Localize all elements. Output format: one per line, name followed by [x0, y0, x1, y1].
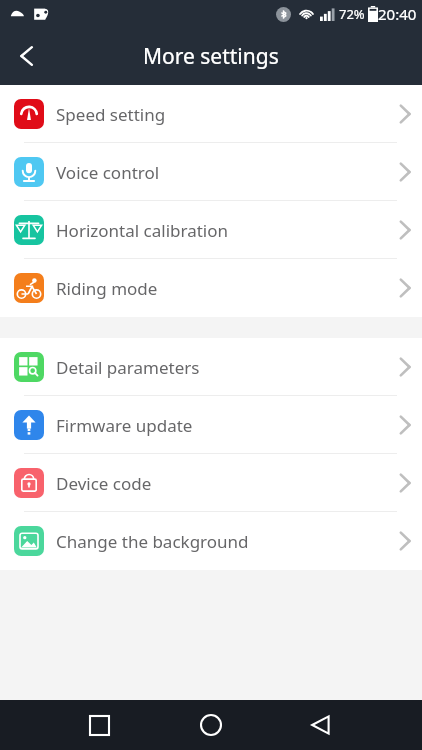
staticText: Detail parameters	[56, 356, 200, 379]
button[interactable]: Firmware update	[0, 396, 422, 454]
staticText: Horizontal calibration	[56, 219, 229, 242]
button[interactable]: Back	[297, 701, 345, 749]
staticText: Firmware update	[56, 414, 193, 437]
staticText: Riding mode	[56, 277, 158, 300]
button[interactable]: Device code	[0, 454, 422, 512]
button[interactable]: Home	[187, 701, 235, 749]
staticText: Change the background	[56, 530, 249, 553]
button[interactable]: Detail parameters	[0, 338, 422, 396]
staticText: Device code	[56, 472, 152, 495]
staticText: 72%	[339, 5, 365, 23]
button[interactable]: Horizontal calibration	[0, 201, 422, 259]
button[interactable]: Recent apps	[75, 701, 123, 749]
staticText: More settings	[143, 42, 279, 71]
staticText: Speed setting	[56, 103, 166, 126]
button[interactable]: Voice control	[0, 143, 422, 201]
button[interactable]: Speed setting	[0, 85, 422, 143]
button[interactable]: Riding mode	[0, 259, 422, 317]
staticText: Voice control	[56, 161, 160, 184]
button[interactable]: Change the background	[0, 512, 422, 570]
staticText: 20:40	[378, 4, 417, 24]
button[interactable]: Back	[0, 30, 52, 82]
